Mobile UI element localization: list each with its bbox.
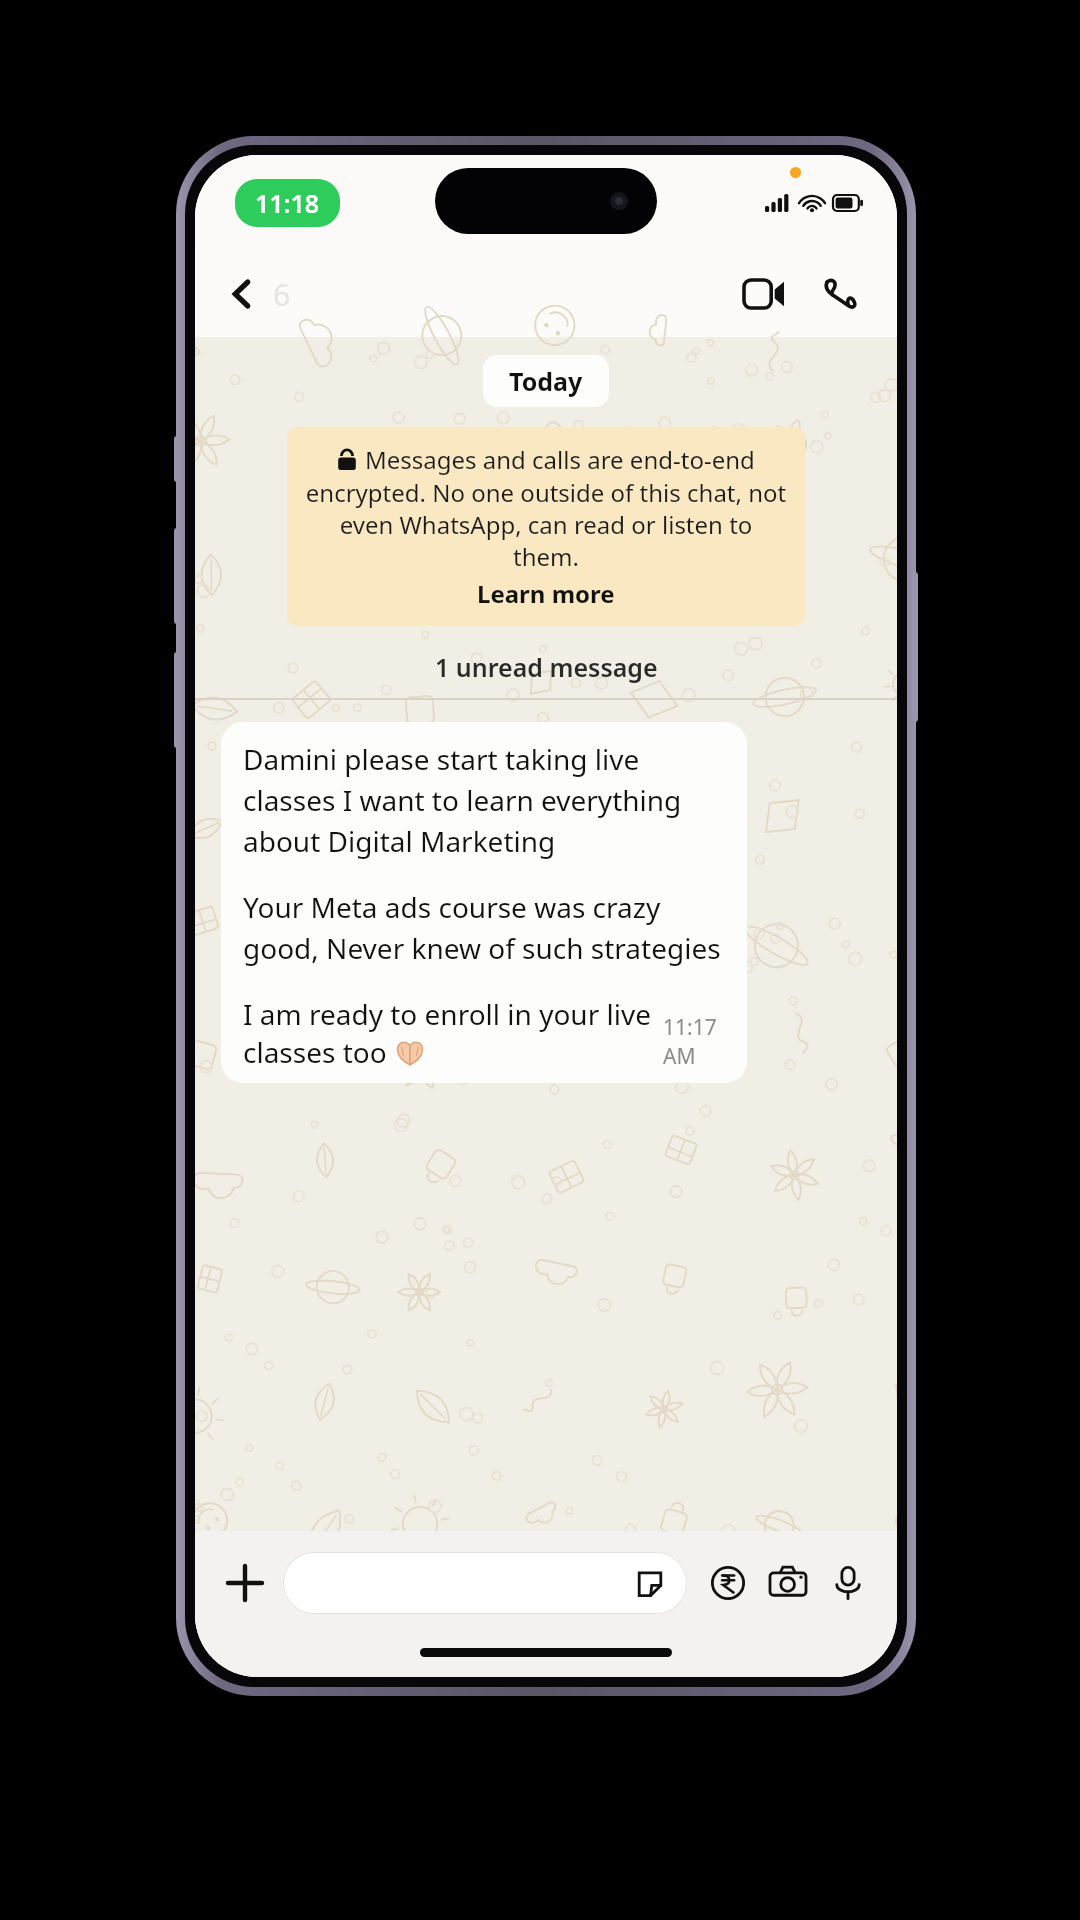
staticText: 6 <box>273 274 291 315</box>
button[interactable]: Payments <box>701 1556 755 1610</box>
staticText: Messages and calls are end-to-end <box>365 443 755 476</box>
staticText: Today <box>509 364 583 398</box>
staticText: 11:17 AM <box>663 1013 729 1071</box>
button[interactable]: Message <box>283 1552 687 1614</box>
button[interactable]: Video call <box>733 263 795 325</box>
button[interactable]: Voice call <box>809 263 871 325</box>
staticText: encrypted. No one outside of this chat, … <box>305 476 787 573</box>
button[interactable]: Attach <box>217 1555 273 1611</box>
button[interactable]: Voice message <box>821 1556 875 1610</box>
button[interactable]: Messages and calls are end-to-end <box>287 427 805 626</box>
staticText: Your Meta ads course was crazy good, Nev… <box>243 888 729 967</box>
button[interactable]: Back <box>217 268 269 320</box>
staticText: classes too <box>243 1033 394 1071</box>
staticText: 11:18 <box>255 186 320 220</box>
staticText: Learn more <box>477 577 615 610</box>
button[interactable]: 1 unread message <box>435 648 658 686</box>
staticText: 1 unread message <box>435 650 658 684</box>
button[interactable]: Damini please start taking live classes … <box>221 722 747 1083</box>
staticText: Damini please start taking live classes … <box>243 740 729 860</box>
staticText: I am ready to enroll in your live <box>243 995 651 1033</box>
button[interactable]: Today <box>483 355 609 407</box>
button[interactable]: Camera <box>761 1556 815 1610</box>
